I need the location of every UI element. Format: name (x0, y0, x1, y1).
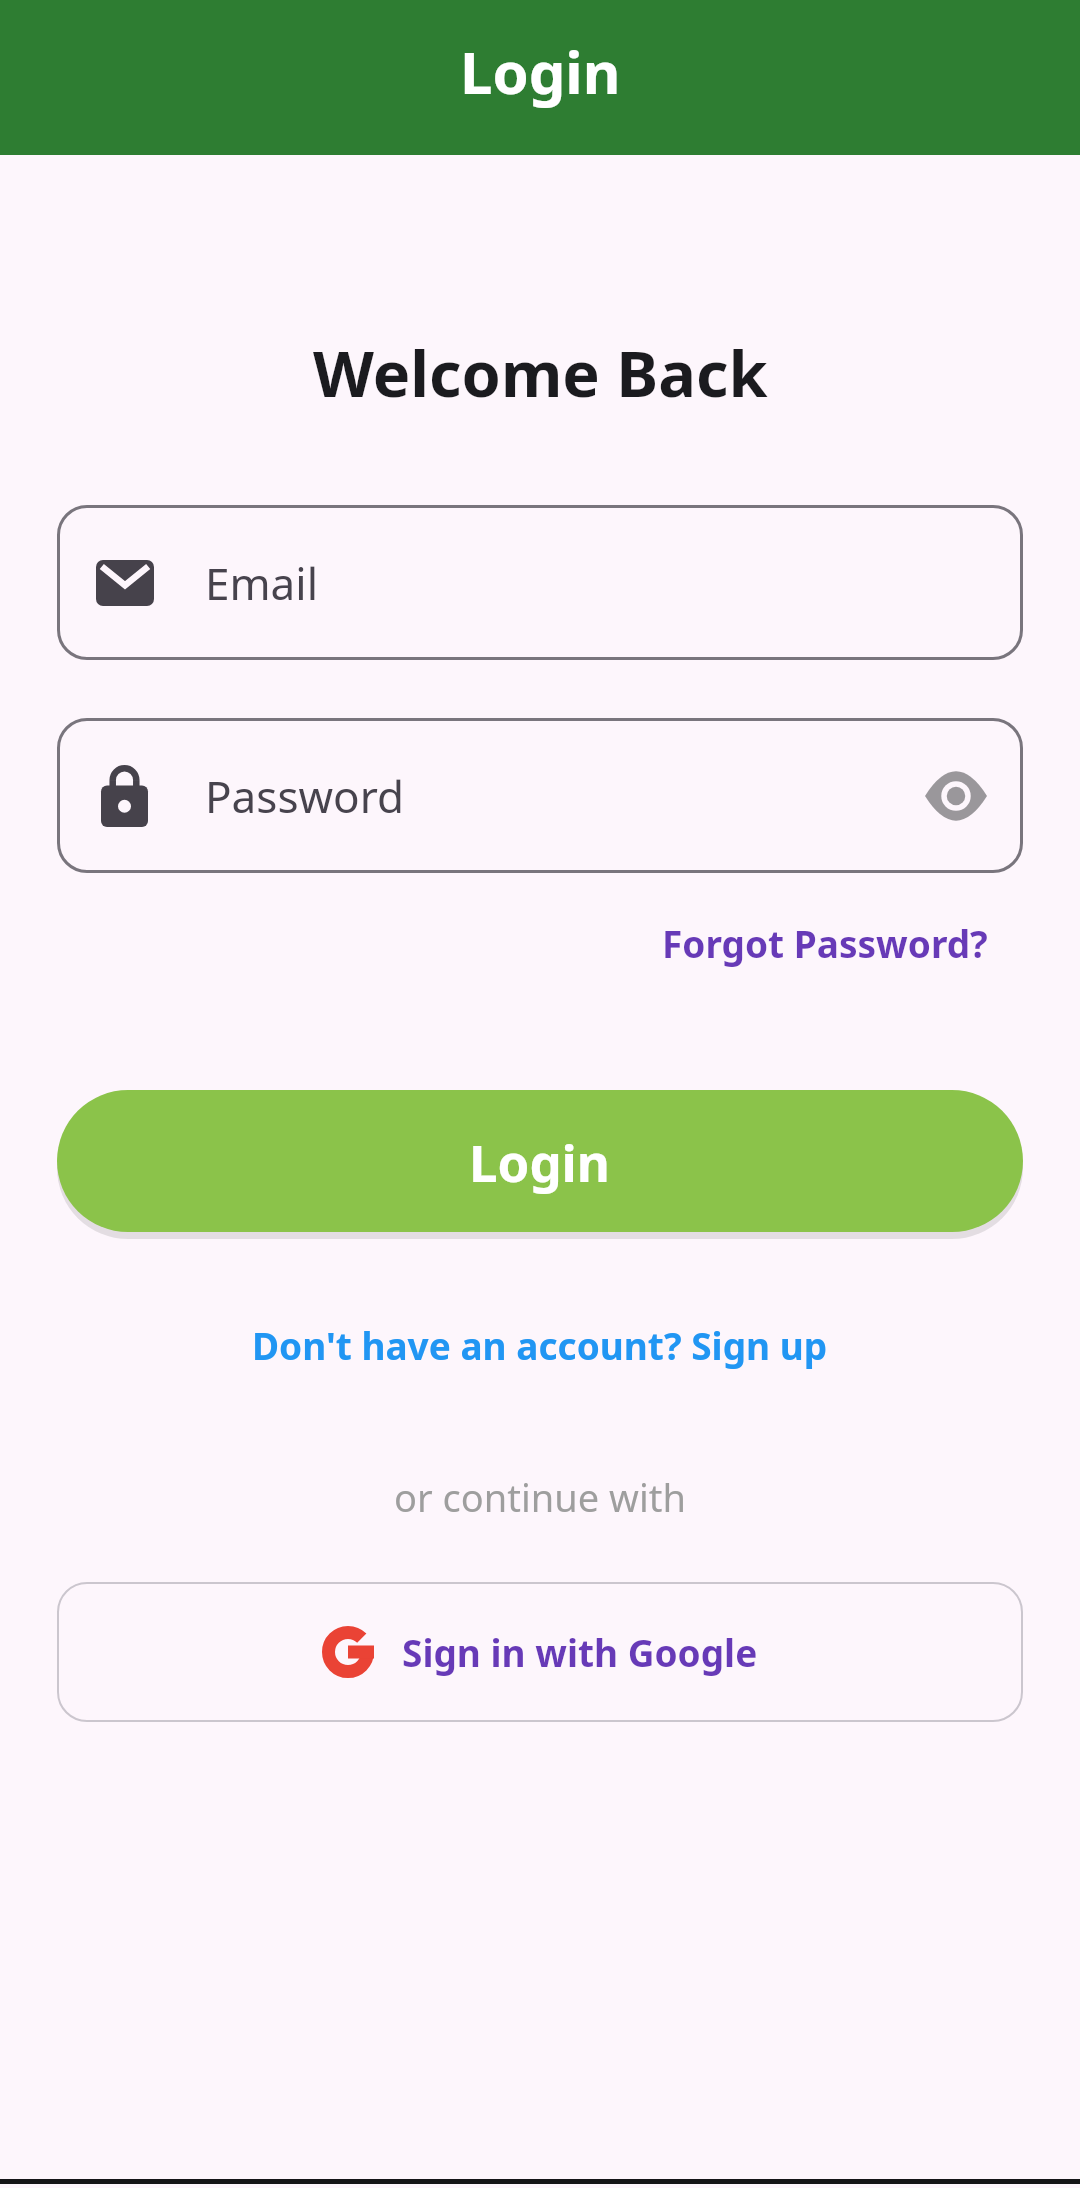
button[interactable]: Don't have an account? Sign up (252, 1312, 828, 1378)
staticText: Forgot Password? (662, 918, 988, 968)
button[interactable] (925, 774, 987, 818)
staticText: Password (205, 766, 405, 826)
staticText: or continue with (394, 1471, 686, 1523)
staticText: Login (460, 32, 621, 111)
staticText: Email (205, 553, 318, 613)
staticText: Welcome Back (313, 330, 768, 416)
staticText: Login (469, 1127, 611, 1196)
button[interactable]: Forgot Password? (662, 913, 988, 973)
button[interactable]: Email (57, 505, 1023, 660)
staticText: Sign in with Google (402, 1627, 758, 1677)
button[interactable]: Sign in with Google (57, 1582, 1023, 1722)
staticText: Don't have an account? Sign up (252, 1320, 828, 1370)
button[interactable]: Password (57, 718, 1023, 873)
button[interactable]: Login (57, 1090, 1023, 1232)
